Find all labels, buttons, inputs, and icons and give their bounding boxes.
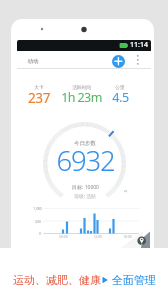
button[interactable]: 1h 23m [58, 89, 104, 105]
staticText: 活跃时间 [72, 84, 91, 90]
button[interactable]: 6932 [45, 142, 125, 172]
staticText: 1h 23m [61, 89, 102, 105]
staticText: 4.5 [112, 89, 129, 105]
staticText: 目标: 10000 [72, 184, 99, 191]
button[interactable]: 237 [16, 89, 62, 105]
staticText: 等级: 活跃 [74, 193, 96, 200]
staticText: 06:00 [59, 235, 68, 239]
staticText: 公里 [115, 84, 125, 90]
staticText: 12:00 [93, 235, 102, 239]
staticText: 运动、减肥、健康 [13, 273, 101, 287]
button[interactable] [128, 232, 152, 248]
staticText: 11:14 [130, 40, 148, 50]
staticText: 237 [28, 89, 50, 105]
button[interactable]: 4.5 [97, 89, 143, 105]
staticText: 大卡 [34, 84, 44, 90]
staticText: 全面管理 [109, 272, 156, 287]
staticText: 1,080 [33, 206, 42, 210]
staticText: 6932 [56, 142, 115, 172]
button[interactable] [112, 55, 125, 68]
button[interactable] [134, 53, 142, 69]
staticText: 540 [35, 219, 41, 223]
staticText: 0 [39, 231, 41, 235]
button[interactable]: 运动、减肥、健康 [0, 265, 168, 293]
staticText: 动动 [27, 58, 39, 65]
staticText: 18:00 [123, 235, 132, 239]
staticText: 今日步数 [74, 140, 96, 147]
